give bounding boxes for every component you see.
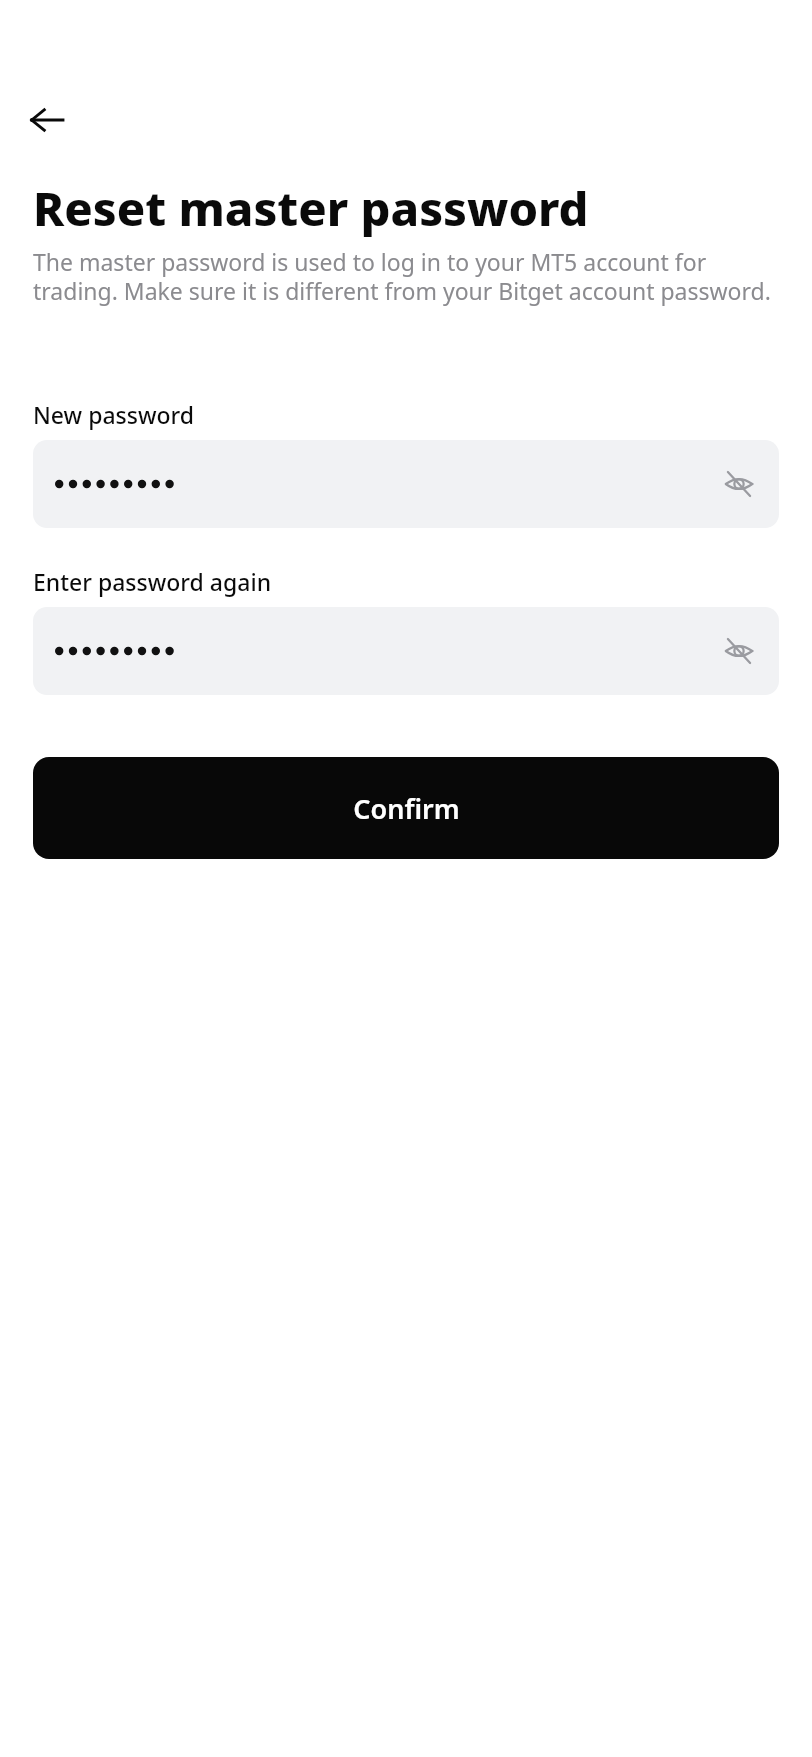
staticText: The master password is used to log in to… [33, 246, 779, 307]
staticText: Reset master password [33, 176, 589, 240]
button[interactable]: Show password [33, 607, 779, 695]
staticText: Confirm [353, 790, 460, 827]
staticText: Enter password again [33, 566, 272, 597]
button[interactable]: Back [19, 92, 75, 148]
button[interactable]: Show password [713, 458, 765, 510]
button[interactable]: Show password [33, 440, 779, 528]
button[interactable]: Confirm [33, 757, 779, 859]
button[interactable]: Show password [713, 625, 765, 677]
staticText: New password [33, 399, 195, 430]
